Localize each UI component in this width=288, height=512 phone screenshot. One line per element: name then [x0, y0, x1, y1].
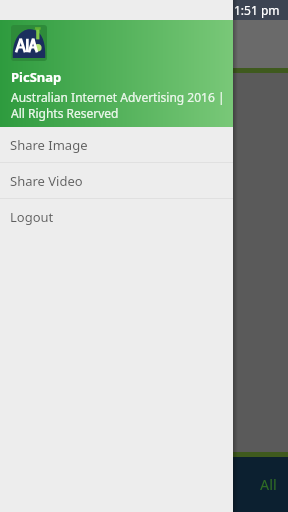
button[interactable]: All [248, 457, 288, 512]
staticText: All [260, 475, 277, 494]
staticText: 1:51 pm [234, 2, 280, 18]
staticText: Logout [10, 208, 54, 226]
staticText: PicSnap [56, 31, 127, 57]
button[interactable]: Logout [0, 199, 233, 234]
staticText: Share Video [10, 172, 83, 190]
other: AIA logo [11, 25, 47, 61]
button[interactable]: AIA logo [0, 20, 233, 127]
button[interactable]: Share Video [0, 163, 233, 198]
button[interactable]: Share Image [0, 127, 233, 162]
staticText: PicSnap [11, 68, 62, 86]
staticText: Share Image [10, 136, 88, 154]
staticText: Australian Internet Advertising 2016 | A… [11, 89, 225, 121]
